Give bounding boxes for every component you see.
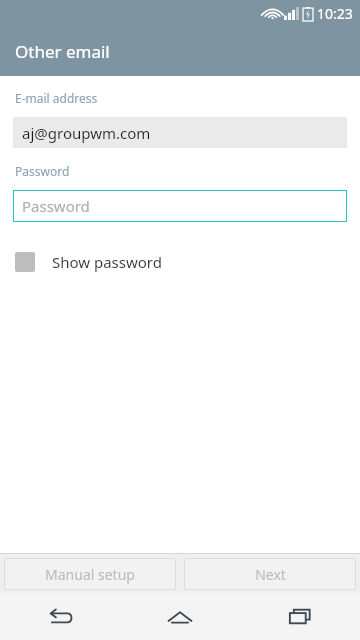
button[interactable]: Show password (15, 252, 162, 272)
staticText: 10:23 (317, 4, 353, 23)
button[interactable]: aj@groupwm.com (13, 117, 347, 148)
staticText: Other email (15, 40, 110, 63)
staticText: aj@groupwm.com (22, 123, 151, 143)
button[interactable]: Password (13, 190, 347, 222)
staticText: E-mail address (15, 90, 98, 106)
button[interactable]: Recent apps (240, 593, 360, 640)
staticText: Manual setup (45, 565, 135, 584)
staticText: Password (15, 163, 70, 179)
button[interactable]: Manual setup (4, 558, 176, 590)
staticText: Show password (52, 252, 162, 272)
staticText: Password (22, 196, 90, 216)
staticText: Next (255, 565, 286, 584)
button[interactable]: Next (184, 558, 356, 590)
button[interactable]: Back (0, 593, 120, 640)
button[interactable]: Home (120, 593, 240, 640)
